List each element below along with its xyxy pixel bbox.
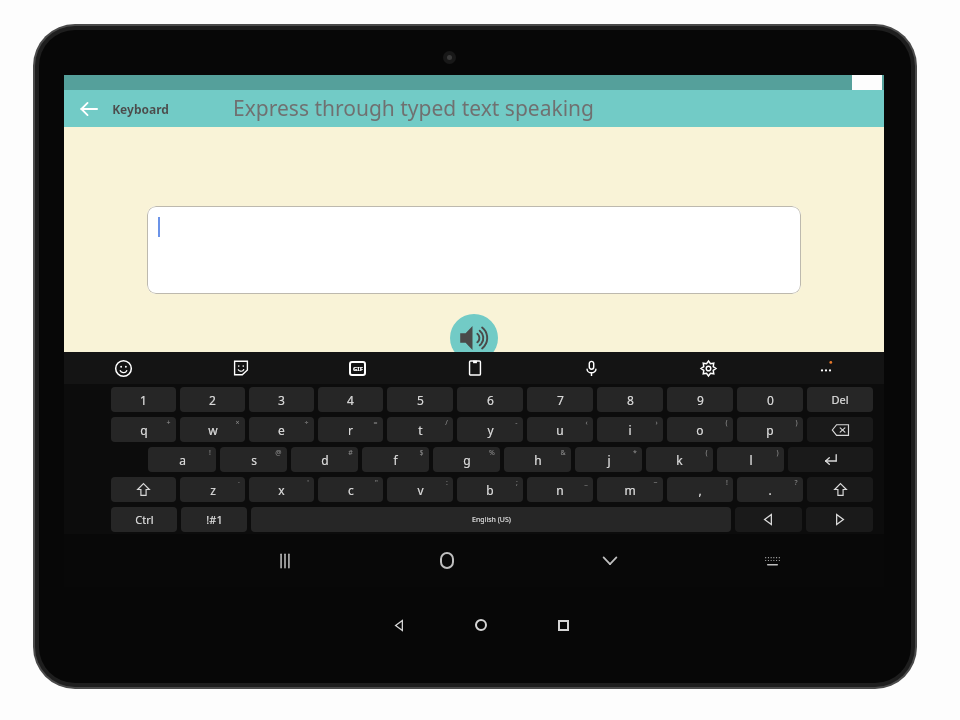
staticText: Keyboard [112,101,169,117]
button[interactable]: Hide keyboard [528,534,691,587]
button[interactable]: r [318,417,383,442]
button[interactable]: i [597,417,663,442]
button[interactable]: Overview [522,609,604,641]
button[interactable]: right [806,507,873,532]
staticText: Ctrl [135,512,154,527]
staticText: : [446,478,448,488]
button[interactable]: English (US) [251,507,731,532]
staticText: English (US) [472,515,511,525]
staticText: 1 [140,392,147,408]
staticText: % [489,448,495,458]
staticText: * [633,448,637,458]
staticText: _ [584,478,588,488]
staticText: 2 [209,392,216,408]
button[interactable]: shift [111,477,176,502]
button[interactable]: 1 [111,387,176,412]
staticText: , [698,482,702,498]
staticText: r [348,422,353,438]
button[interactable]: j [575,447,642,472]
button[interactable]: 6 [457,387,523,412]
staticText: ‹ [585,418,588,428]
button[interactable]: s [220,447,287,472]
button[interactable]: Home [366,534,528,587]
button[interactable]: e [249,417,314,442]
staticText: q [140,422,148,438]
staticText: b [486,482,494,498]
staticText: p [766,422,774,438]
button[interactable]: w [180,417,245,442]
staticText: Del [831,392,849,407]
button[interactable]: p [737,417,803,442]
button[interactable]: l [717,447,784,472]
button[interactable]: z [180,477,245,502]
staticText: ( [705,448,708,458]
button[interactable]: 3 [249,387,314,412]
button[interactable]: Voice input [533,352,650,384]
button[interactable]: , [667,477,733,502]
staticText: 6 [487,392,494,408]
button[interactable]: n [527,477,593,502]
staticText: ) [795,418,798,428]
button[interactable]: Home [440,609,522,641]
button[interactable]: v [387,477,453,502]
button[interactable]: a [148,447,216,472]
button[interactable]: Change keyboard [691,534,854,587]
staticText: c [348,482,354,498]
staticText: g [463,452,471,468]
button[interactable]: 2 [180,387,245,412]
button[interactable] [147,206,801,294]
button[interactable]: Stickers [182,352,299,384]
staticText: 5 [417,392,424,408]
button[interactable]: x [249,477,314,502]
button[interactable]: Settings [650,352,767,384]
button[interactable]: Recents [204,534,366,587]
staticText: n [556,482,564,498]
button[interactable]: 4 [318,387,383,412]
button[interactable]: left [735,507,802,532]
button[interactable]: 7 [527,387,593,412]
button[interactable]: 5 [387,387,453,412]
button[interactable]: GIF [299,352,416,384]
button[interactable]: 0 [737,387,803,412]
button[interactable]: Back [72,92,106,126]
button[interactable]: q [111,417,176,442]
button[interactable]: 8 [597,387,663,412]
button[interactable]: Ctrl [111,507,177,532]
staticText: ' [307,478,309,488]
staticText: 9 [697,392,704,408]
staticText: & [560,448,566,458]
button[interactable]: backspace [807,417,873,442]
staticText: i [628,422,632,438]
button[interactable]: Clipboard [416,352,533,384]
button[interactable]: 9 [667,387,733,412]
button[interactable]: !#1 [181,507,247,532]
staticText: x [278,482,285,498]
button[interactable]: c [318,477,383,502]
button[interactable]: b [457,477,523,502]
button[interactable]: Speak text [450,314,498,362]
button[interactable]: t [387,417,453,442]
button[interactable]: enter [788,447,873,472]
staticText: ~ [653,478,658,488]
button[interactable]: y [457,417,523,442]
staticText: o [696,422,704,438]
button[interactable]: d [291,447,358,472]
button[interactable]: g [433,447,500,472]
button[interactable]: o [667,417,733,442]
button[interactable]: shift [807,477,873,502]
button[interactable]: Back [359,609,440,641]
staticText: s [251,452,257,468]
button[interactable]: k [646,447,713,472]
button[interactable]: More [767,352,884,384]
button[interactable]: . [737,477,803,502]
button[interactable]: Emoji [64,352,182,384]
button[interactable]: u [527,417,593,442]
button[interactable]: Del [807,387,873,412]
button[interactable]: f [362,447,429,472]
staticText: = [373,418,378,428]
staticText: ! [209,448,211,458]
button[interactable]: m [597,477,663,502]
button[interactable]: h [504,447,571,472]
staticText: ! [726,478,728,488]
staticText: . [768,482,772,498]
